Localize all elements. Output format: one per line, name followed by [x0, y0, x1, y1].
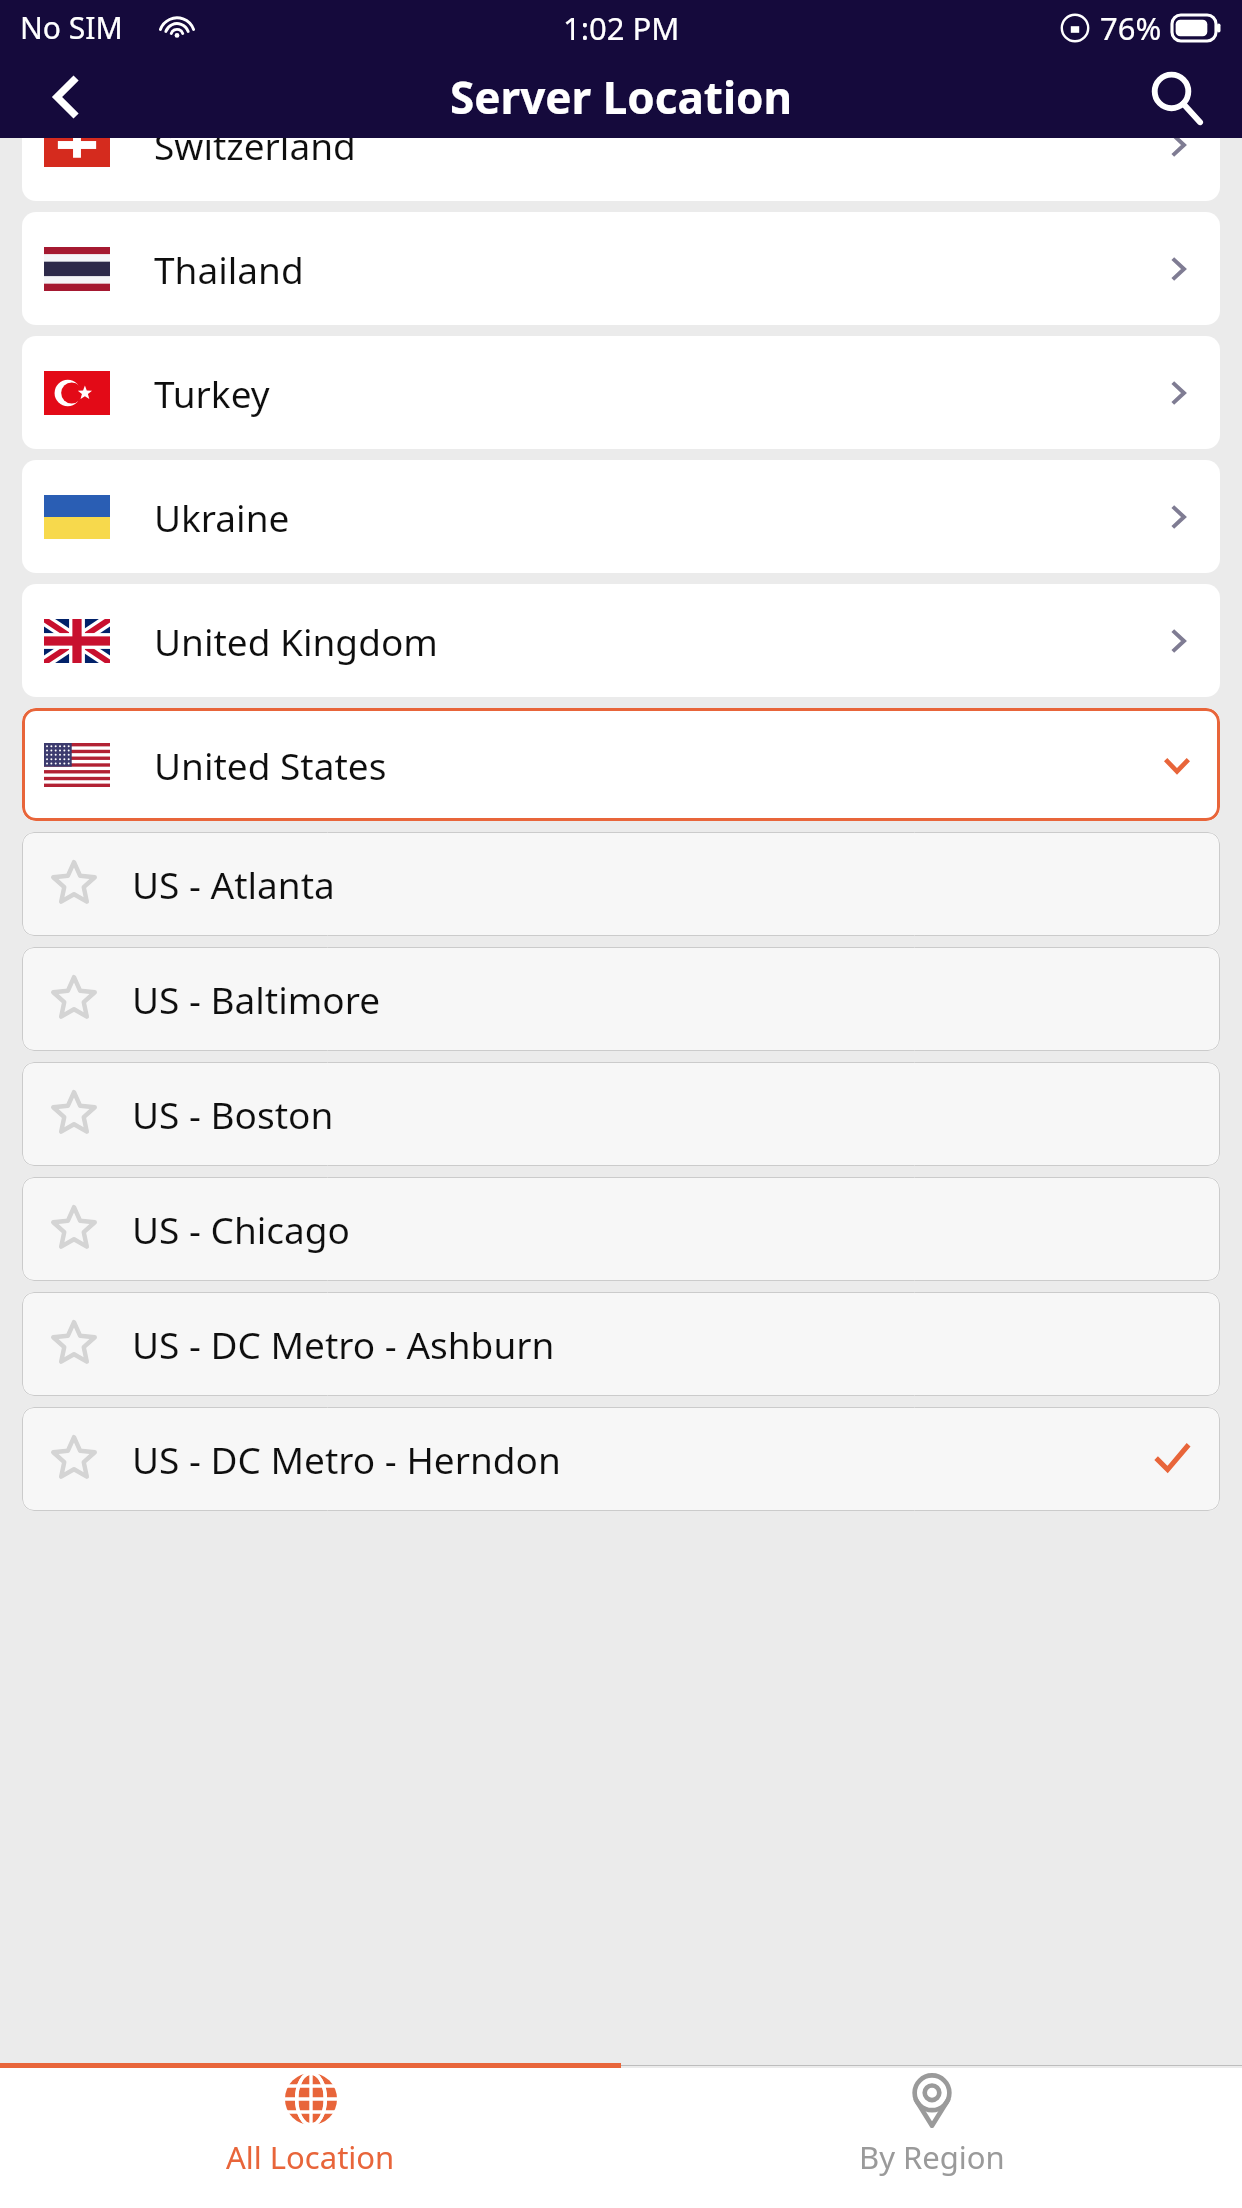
staticText: By Region [859, 2136, 1005, 2178]
button[interactable]: Switzerland [22, 88, 1220, 201]
staticText: Thailand [154, 244, 304, 294]
staticText: Switzerland [154, 120, 356, 170]
button[interactable]: Favorite [22, 1062, 1220, 1166]
staticText: US - Atlanta [132, 859, 335, 909]
button[interactable]: Turkey [22, 336, 1220, 449]
staticText: US - DC Metro - Herndon [132, 1434, 561, 1484]
staticText: US - Boston [132, 1089, 334, 1139]
button[interactable]: By Region [621, 2068, 1242, 2178]
staticText: Ukraine [154, 492, 290, 542]
button[interactable]: Back [28, 59, 104, 135]
staticText: 76% [1100, 7, 1162, 49]
button[interactable]: Ukraine [22, 460, 1220, 573]
staticText: US - DC Metro - Ashburn [132, 1319, 555, 1369]
button[interactable]: Favorite [22, 832, 1220, 936]
button[interactable]: Favorite [22, 947, 1220, 1051]
button[interactable]: All Location [0, 2068, 621, 2178]
other: Favorite [48, 1088, 100, 1140]
staticText: No SIM [20, 7, 123, 48]
other: Favorite [48, 973, 100, 1025]
staticText: US - Chicago [132, 1204, 350, 1254]
other: Favorite [48, 1203, 100, 1255]
button[interactable]: United Kingdom [22, 584, 1220, 697]
staticText: Server Location [450, 67, 793, 127]
button[interactable]: United States [22, 708, 1220, 821]
button[interactable]: Search [1138, 59, 1214, 135]
staticText: All Location [226, 2136, 395, 2178]
staticText: US - Baltimore [132, 974, 381, 1024]
staticText: 1:02 PM [563, 7, 680, 49]
other: Favorite [48, 1433, 100, 1485]
other: Favorite [48, 858, 100, 910]
staticText: Turkey [154, 368, 270, 418]
button[interactable]: Favorite [22, 1177, 1220, 1281]
other: Favorite [48, 1318, 100, 1370]
button[interactable]: Thailand [22, 212, 1220, 325]
button[interactable]: Favorite [22, 1407, 1220, 1511]
staticText: United States [154, 740, 387, 790]
staticText: United Kingdom [154, 616, 438, 666]
button[interactable]: Favorite [22, 1292, 1220, 1396]
